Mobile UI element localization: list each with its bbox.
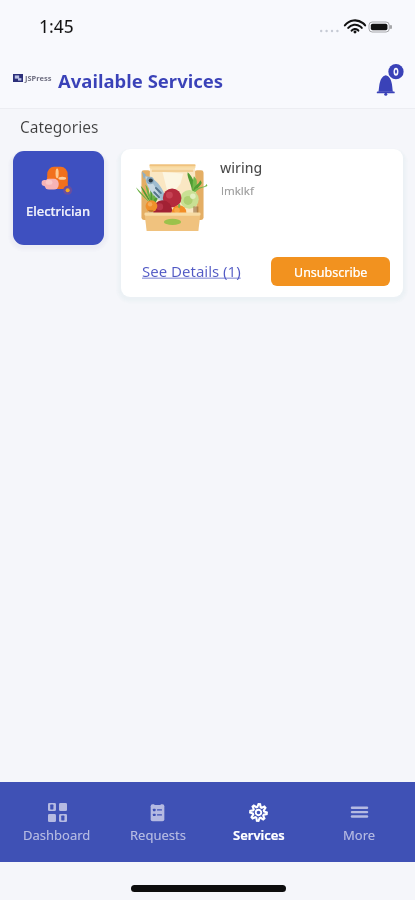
staticText: Services — [233, 826, 285, 844]
staticText: JSPress — [25, 73, 52, 83]
staticText: Dashboard — [23, 826, 91, 844]
staticText: Electrician — [26, 202, 91, 220]
staticText: lmklkf — [221, 183, 254, 199]
staticText: 1:45 — [39, 14, 74, 38]
button[interactable]: Electrician — [13, 151, 104, 245]
staticText: More — [343, 826, 376, 844]
staticText: Categories — [20, 116, 99, 137]
button[interactable]: Services — [208, 782, 309, 862]
button[interactable]: Unsubscribe — [271, 257, 390, 286]
button[interactable]: Dashboard — [7, 782, 107, 862]
staticText: See Details (1) — [142, 261, 241, 281]
staticText: Requests — [130, 826, 186, 844]
button[interactable]: Requests — [107, 782, 208, 862]
button[interactable]: See Details (1) — [142, 257, 241, 285]
staticText: Unsubscribe — [294, 264, 368, 281]
button[interactable]: More — [309, 782, 410, 862]
staticText: Available Services — [58, 68, 224, 93]
staticText: wiring — [220, 158, 263, 177]
button[interactable]: Notifications — [372, 63, 406, 97]
